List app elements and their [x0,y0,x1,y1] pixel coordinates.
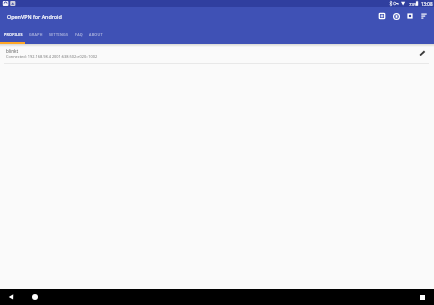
staticText: blinkt [6,48,19,54]
button[interactable]: PROFILES [1,25,26,44]
staticText: SETTINGS [49,32,69,37]
staticText: PROFILES [4,32,23,37]
staticText: GRAPH [29,32,43,37]
button[interactable]: GRAPH [26,25,46,44]
button[interactable]: FAQ [72,25,86,44]
staticText: ABOUT [89,32,103,37]
button[interactable]: blinkt [0,44,434,63]
button[interactable]: Import profile [375,7,389,25]
button[interactable]: Scan QR code [403,7,417,25]
button[interactable]: Back [4,290,18,304]
staticText: 13:08 [421,1,433,7]
staticText: OpenVPN for Android [7,13,62,20]
button[interactable]: Add profile [389,7,403,25]
button[interactable]: Recent apps [415,290,429,304]
button[interactable]: Sort [417,7,431,25]
button[interactable]: ABOUT [86,25,106,44]
button[interactable]: Edit profile [412,44,433,63]
staticText: Connected: 192.168.98.4 2001:638:502:e02… [6,54,98,59]
staticText: FAQ [75,32,83,37]
button[interactable]: Home [28,290,42,304]
staticText: 73% [409,1,418,7]
button[interactable]: SETTINGS [46,25,72,44]
